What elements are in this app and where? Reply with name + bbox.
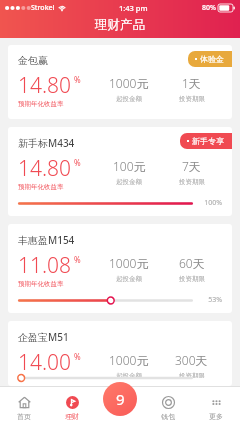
staticText: % [74,157,81,168]
staticText: 理财产品 [95,17,145,33]
staticText: % [74,74,81,85]
staticText: 更多 [209,412,223,421]
staticText: 投资期限 [179,95,205,103]
staticText: 预期年化收益率 [18,100,64,108]
staticText: 钱包 [161,412,175,421]
staticText: 起投金额 [116,372,142,378]
staticText: 新手标M434 [18,136,75,150]
button[interactable]: 理财 [48,386,96,427]
staticText: 金包赢 [18,54,48,67]
staticText: 起投金额 [116,95,142,103]
button[interactable]: 金包赢 [8,45,232,119]
staticText: 预期年化收益率 [18,377,64,378]
staticText: 300天 [175,352,208,368]
staticText: 1000元 [109,352,149,368]
button[interactable]: 9 新消息 [103,382,137,416]
staticText: 53% [200,295,222,305]
staticText: 1000元 [109,255,149,271]
staticText: 1:43 pm [119,3,148,13]
staticText: 投资期限 [179,178,205,186]
staticText: 投资期限 [179,372,205,378]
staticText: 起投金额 [116,275,142,283]
staticText: 60天 [179,255,205,271]
staticText: 14.80 [18,71,72,100]
button[interactable]: 企盈宝M51 [8,321,232,386]
staticText: % [74,351,81,362]
button[interactable]: 钱包 [144,386,192,427]
staticText: 9 [116,389,125,409]
staticText: 起投金额 [116,178,142,186]
button[interactable]: 更多 [192,386,240,427]
staticText: 理财 [65,412,79,421]
staticText: 首页 [17,412,31,421]
button[interactable]: 丰惠盈M154 [8,224,232,313]
staticText: 预期年化收益率 [18,280,64,288]
staticText: 100% [200,198,222,208]
button[interactable]: 新手专享 [180,133,232,149]
button[interactable]: 新手标M434 [8,127,232,216]
staticText: 80% [202,3,216,13]
staticText: 100元 [113,158,146,174]
staticText: 11.08 [18,251,72,280]
staticText: 预期年化收益率 [18,183,64,191]
staticText: 1000元 [109,75,149,91]
staticText: % [74,254,81,265]
staticText: 7天 [182,158,201,174]
staticText: 体验金 [200,54,224,64]
staticText: Strokel [31,3,55,13]
staticText: 企盈宝M51 [18,330,69,344]
staticText: 14.00 [18,348,72,377]
staticText: 丰惠盈M154 [18,233,75,247]
button[interactable]: 首页 [0,386,48,427]
staticText: 投资期限 [179,275,205,283]
staticText: 14.80 [18,154,72,183]
button[interactable]: 体验金 [188,51,232,67]
staticText: 新手专享 [192,136,224,146]
staticText: 1天 [182,75,201,91]
